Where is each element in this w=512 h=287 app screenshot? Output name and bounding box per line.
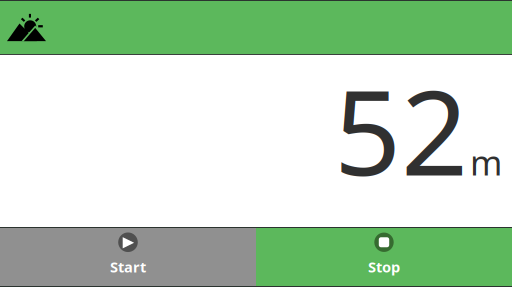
- staticText: m: [470, 139, 502, 185]
- staticText: 52: [334, 52, 468, 208]
- staticText: Start: [110, 257, 146, 277]
- button[interactable]: Start: [0, 228, 256, 286]
- staticText: Stop: [368, 257, 400, 277]
- button[interactable]: App icon: [0, 1, 53, 54]
- button[interactable]: Stop: [256, 228, 512, 286]
